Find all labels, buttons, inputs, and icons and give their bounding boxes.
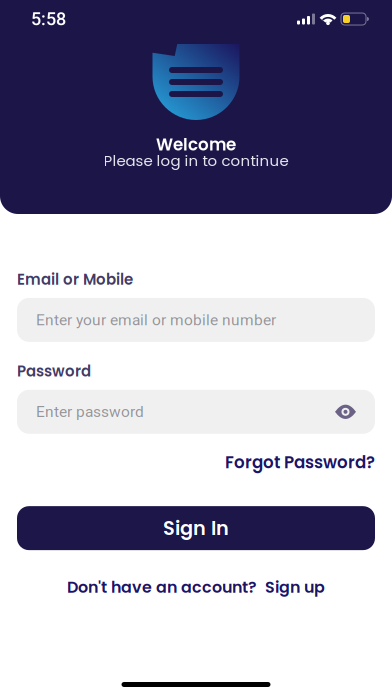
staticText: Please log in to continue	[103, 150, 288, 171]
button[interactable]: Don't have an account? Sign up	[17, 576, 375, 598]
staticText: Don't have an account? Sign up	[67, 576, 325, 598]
staticText: Enter your email or mobile number	[36, 311, 276, 329]
staticText: Welcome	[156, 133, 236, 156]
staticText: Sign In	[163, 515, 229, 542]
staticText: Enter password	[36, 403, 144, 421]
button[interactable]: Forgot Password?	[17, 451, 375, 474]
staticText: Email or Mobile	[17, 269, 133, 290]
staticText: Forgot Password?	[225, 451, 375, 474]
button[interactable]: Sign In	[17, 506, 375, 550]
staticText: 5:58	[31, 8, 66, 30]
staticText: Password	[17, 361, 91, 382]
